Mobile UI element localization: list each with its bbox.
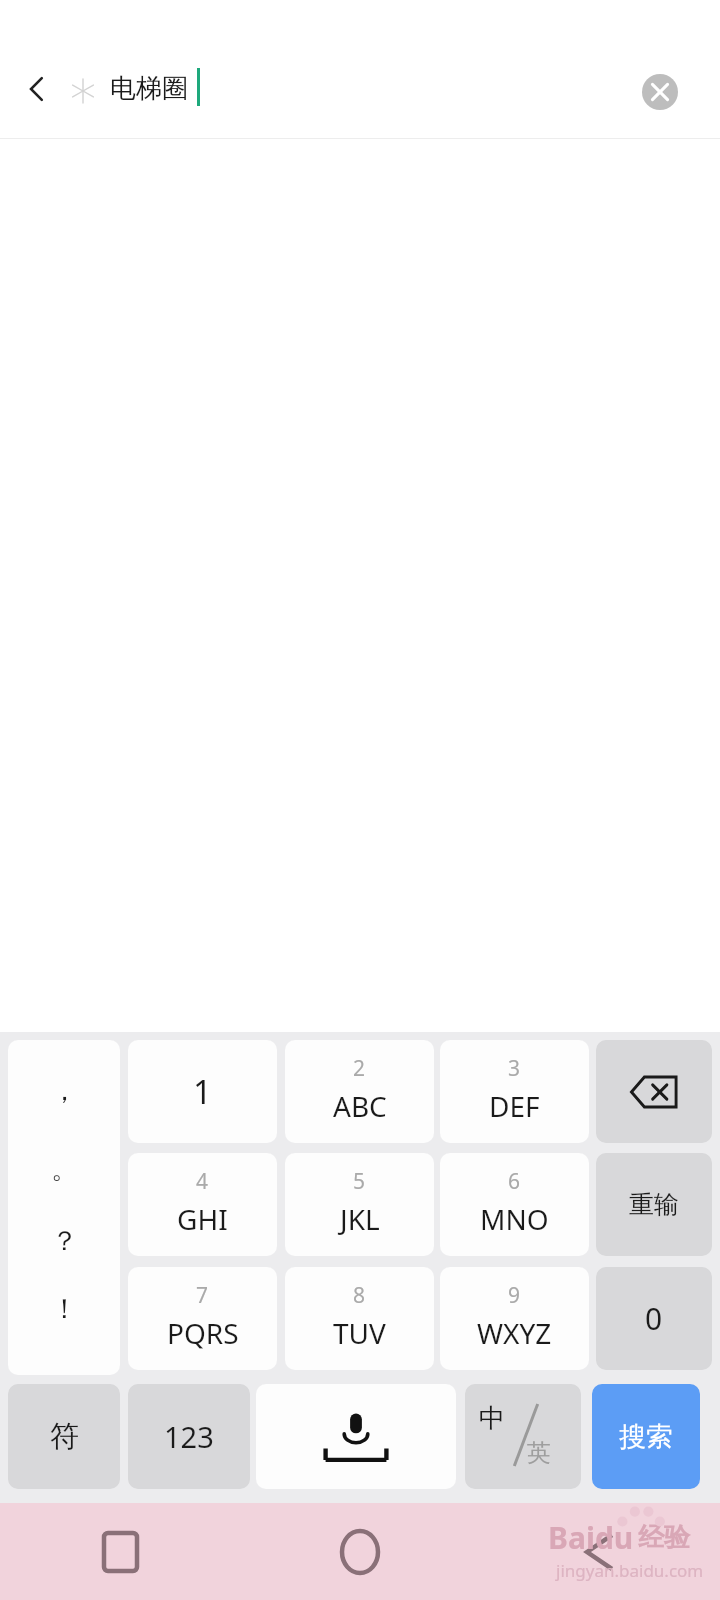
staticText: 123 bbox=[164, 1417, 214, 1456]
button[interactable]: ABC bbox=[285, 1040, 434, 1143]
staticText: 。 bbox=[51, 1152, 78, 1186]
button[interactable]: Back bbox=[10, 62, 64, 116]
button[interactable]: 搜索 bbox=[592, 1384, 700, 1489]
button[interactable]: 1 bbox=[128, 1040, 277, 1143]
staticText: ！ bbox=[51, 1292, 78, 1326]
button[interactable]: 123 bbox=[128, 1384, 250, 1489]
staticText: ， bbox=[51, 1074, 78, 1108]
staticText: 9 bbox=[508, 1281, 521, 1310]
button[interactable]: Recents bbox=[0, 1503, 240, 1600]
staticText: WXYZ bbox=[477, 1314, 552, 1352]
staticText: PQRS bbox=[167, 1314, 239, 1352]
staticText: MNO bbox=[480, 1200, 549, 1238]
button[interactable]: 符 bbox=[8, 1384, 120, 1489]
staticText: 4 bbox=[196, 1167, 209, 1196]
staticText: Baidu bbox=[548, 1517, 634, 1558]
button[interactable]: 中英切换 bbox=[465, 1384, 581, 1489]
button[interactable]: TUV bbox=[285, 1267, 434, 1370]
staticText: 3 bbox=[508, 1054, 521, 1083]
staticText: 搜索 bbox=[619, 1420, 673, 1454]
button[interactable]: DEF bbox=[440, 1040, 589, 1143]
button[interactable]: 重输 bbox=[596, 1153, 712, 1256]
staticText: 0 bbox=[645, 1298, 663, 1339]
button[interactable]: ， bbox=[8, 1040, 120, 1375]
button[interactable]: Clear text bbox=[640, 72, 680, 112]
staticText: 重输 bbox=[629, 1189, 679, 1220]
button[interactable]: JKL bbox=[285, 1153, 434, 1256]
button[interactable]: WXYZ bbox=[440, 1267, 589, 1370]
staticText: TUV bbox=[333, 1314, 386, 1352]
button[interactable]: PQRS bbox=[128, 1267, 277, 1370]
staticText: ABC bbox=[333, 1087, 387, 1125]
staticText: DEF bbox=[489, 1087, 540, 1125]
staticText: 7 bbox=[196, 1281, 209, 1310]
button[interactable]: Back bbox=[480, 1503, 720, 1600]
staticText: 2 bbox=[353, 1054, 366, 1083]
staticText: 符 bbox=[50, 1418, 79, 1455]
staticText: JKL bbox=[340, 1200, 380, 1238]
staticText: 6 bbox=[508, 1167, 521, 1196]
staticText: ？ bbox=[51, 1224, 78, 1258]
staticText: jingyan.baidu.com bbox=[556, 1559, 704, 1582]
button[interactable]: Space / voice input bbox=[256, 1384, 456, 1489]
staticText: 经验 bbox=[638, 1521, 690, 1554]
button[interactable]: GHI bbox=[128, 1153, 277, 1256]
staticText: GHI bbox=[177, 1200, 228, 1238]
staticText: 8 bbox=[353, 1281, 366, 1310]
staticText: 5 bbox=[353, 1167, 366, 1196]
button[interactable]: MNO bbox=[440, 1153, 589, 1256]
button[interactable]: Backspace bbox=[596, 1040, 712, 1143]
staticText: 中 bbox=[479, 1402, 505, 1435]
button[interactable]: 0 bbox=[596, 1267, 712, 1370]
staticText: 1 bbox=[193, 1069, 212, 1114]
staticText: 电梯圈 bbox=[110, 72, 188, 105]
staticText: 英 bbox=[527, 1438, 551, 1468]
button[interactable]: Home bbox=[240, 1503, 480, 1600]
